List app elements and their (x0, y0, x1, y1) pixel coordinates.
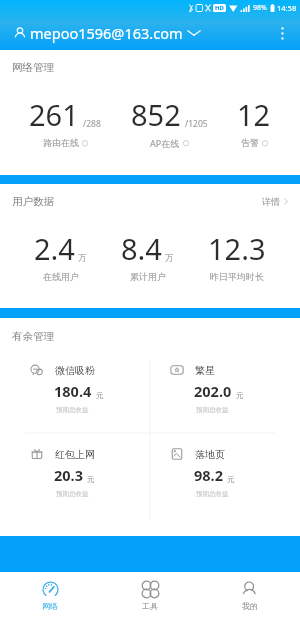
staticText: 网络 (42, 601, 58, 611)
staticText: 202.0 (194, 381, 232, 401)
staticText: 261 (29, 95, 79, 134)
staticText: 万 (78, 253, 87, 264)
staticText: AP在线 (150, 137, 180, 149)
button[interactable]: 2.4 (34, 229, 87, 282)
button[interactable]: 12.3 (208, 229, 266, 282)
staticText: 落地页 (195, 448, 225, 461)
staticText: 预期总收益 (56, 490, 89, 498)
staticText: 微信吸粉 (55, 364, 95, 377)
staticText: HD (215, 4, 224, 12)
button[interactable]: 微信吸粉 (10, 359, 150, 418)
staticText: 详情 (262, 196, 280, 207)
staticText: /1205 (185, 118, 208, 130)
staticText: 预期总收益 (196, 490, 229, 498)
staticText: 红包上网 (55, 448, 95, 461)
staticText: 用户数据 (12, 195, 54, 208)
staticText: 累计用户 (130, 271, 166, 282)
staticText: 告警 (241, 137, 259, 148)
staticText: 12 (237, 95, 271, 134)
staticText: 2.4 (34, 229, 75, 268)
staticText: 12.3 (208, 229, 266, 268)
staticText: 万 (165, 253, 174, 264)
button[interactable]: 12 (237, 95, 271, 148)
button[interactable]: 261 (29, 95, 101, 148)
button[interactable]: 852 (131, 95, 208, 149)
staticText: 路由在线 (43, 137, 79, 148)
staticText: 我的 (242, 601, 258, 611)
staticText: 8.4 (121, 229, 162, 268)
staticText: 14:58 (277, 3, 297, 13)
staticText: 元 (96, 391, 104, 400)
staticText: 预期总收益 (196, 406, 229, 414)
button[interactable]: 落地页 (150, 443, 290, 502)
staticText: 元 (227, 475, 235, 484)
staticText: 98.2 (194, 465, 223, 485)
staticText: 852 (131, 95, 181, 134)
button[interactable]: 8.4 (121, 229, 174, 282)
button[interactable]: 繁星 (150, 359, 290, 418)
staticText: 在线用户 (43, 271, 79, 282)
staticText: 98% (253, 3, 267, 13)
staticText: 20.3 (54, 465, 83, 485)
staticText: 有余管理 (12, 330, 54, 343)
staticText: 元 (87, 475, 95, 484)
button[interactable]: 详情 (262, 196, 288, 207)
button[interactable]: 网络 (0, 572, 100, 619)
staticText: 昨日平均时长 (210, 271, 264, 282)
staticText: 工具 (142, 601, 158, 611)
staticText: 网络管理 (12, 61, 54, 74)
button[interactable]: 我的 (200, 572, 300, 619)
staticText: /288 (83, 118, 101, 130)
button[interactable]: 红包上网 (10, 443, 150, 502)
staticText: 繁星 (195, 364, 215, 377)
staticText: 预期总收益 (56, 406, 89, 414)
button[interactable]: 工具 (100, 572, 200, 619)
button[interactable]: More options (268, 19, 296, 47)
staticText: 元 (236, 391, 244, 400)
staticText: mepoo1596@163.com (30, 23, 183, 43)
staticText: 180.4 (54, 381, 92, 401)
